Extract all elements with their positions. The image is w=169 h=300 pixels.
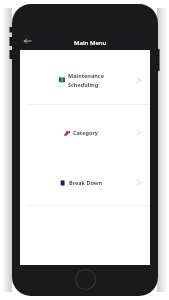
button[interactable]: Category xyxy=(20,105,150,155)
button[interactable]: Maintenance Scheduling xyxy=(20,50,150,104)
staticText: Maintenance Scheduling xyxy=(68,72,104,88)
staticText: Break Down xyxy=(69,179,103,186)
staticText: Main Menu xyxy=(74,39,107,47)
button[interactable]: Back xyxy=(21,35,35,47)
button[interactable]: Break Down xyxy=(20,155,150,205)
staticText: Category xyxy=(73,129,99,136)
